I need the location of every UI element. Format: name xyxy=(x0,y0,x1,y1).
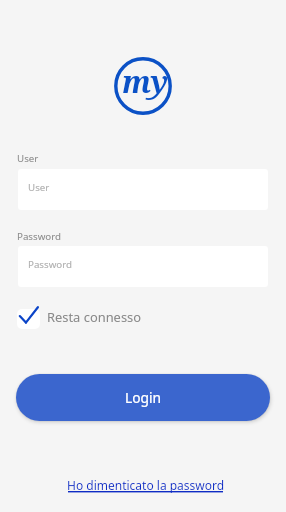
staticText: Login xyxy=(125,388,162,407)
other: my logo xyxy=(114,57,172,115)
staticText: User xyxy=(17,152,39,165)
staticText: Ho dimenticato la password xyxy=(67,477,225,493)
button[interactable]: Ho dimenticato la password xyxy=(62,472,225,498)
button[interactable]: Password xyxy=(18,246,268,287)
staticText: Password xyxy=(17,230,62,243)
button[interactable]: Login xyxy=(16,374,270,421)
button[interactable]: User xyxy=(18,169,268,210)
button[interactable]: Resta connesso xyxy=(15,303,143,331)
staticText: User xyxy=(28,181,50,194)
staticText: my xyxy=(122,61,169,102)
staticText: Password xyxy=(28,258,73,271)
staticText: Resta connesso xyxy=(47,308,142,326)
